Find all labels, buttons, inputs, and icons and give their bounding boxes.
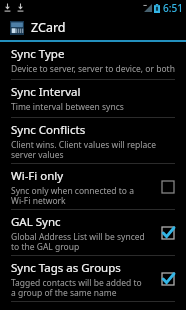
staticText: 6:51: [163, 1, 183, 15]
staticText: Sync Interval: [11, 84, 81, 100]
other: ZCard app icon: [10, 21, 24, 35]
button[interactable]: Sync Type: [0, 42, 186, 79]
staticText: Tagged contacts will be added to a group…: [11, 277, 142, 298]
staticText: Device to server, server to device, or b…: [11, 63, 175, 75]
staticText: Wi-Fi only: [11, 168, 64, 184]
staticText: Time interval between syncs: [11, 101, 124, 113]
button[interactable]: Sync Interval: [0, 80, 186, 117]
button[interactable]: Sync Tags as Groups: [0, 256, 186, 301]
staticText: Sync Type: [11, 46, 65, 62]
button[interactable]: Wi-Fi only: [0, 164, 186, 209]
staticText: Global Address List will be synced to th…: [11, 231, 145, 252]
staticText: Client wins. Client values will replace …: [11, 139, 157, 160]
button[interactable]: Sync Conflicts: [0, 118, 186, 163]
button[interactable]: Enabled, checked: [156, 267, 180, 291]
button[interactable]: Disabled, unchecked: [156, 175, 180, 199]
staticText: GAL Sync: [11, 214, 61, 230]
staticText: ZCard: [31, 19, 66, 36]
button[interactable]: GAL Sync: [0, 210, 186, 255]
staticText: Sync Tags as Groups: [11, 260, 121, 276]
button[interactable]: Enabled, checked: [156, 221, 180, 245]
staticText: Sync Conflicts: [11, 122, 86, 138]
staticText: Sync only when connected to a Wi-Fi netw…: [11, 185, 134, 206]
